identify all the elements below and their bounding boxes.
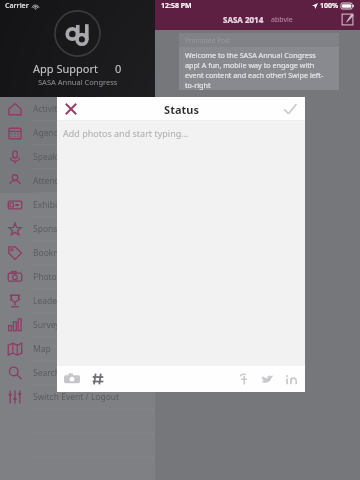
button[interactable]: Attendees bbox=[0, 169, 155, 193]
button[interactable]: Surveys bbox=[0, 313, 155, 337]
staticText: Status bbox=[164, 102, 199, 117]
button[interactable]: Switch Event / Logout bbox=[0, 385, 155, 409]
button[interactable]: Add hashtag bbox=[91, 372, 105, 386]
staticText: Photos bbox=[33, 271, 61, 283]
button[interactable]: Leaderboard bbox=[0, 289, 155, 313]
staticText: Search bbox=[33, 367, 60, 379]
button[interactable]: Map bbox=[0, 337, 155, 361]
button[interactable]: Activity bbox=[0, 97, 155, 121]
staticText: Exhibitors bbox=[33, 199, 73, 211]
button[interactable]: Speakers bbox=[0, 145, 155, 169]
staticText: Speakers bbox=[33, 151, 70, 163]
button[interactable]: Add photos and start typing... bbox=[57, 121, 305, 366]
button[interactable]: Close bbox=[61, 99, 81, 119]
button[interactable]: Photos bbox=[0, 265, 155, 289]
staticText: Map bbox=[33, 343, 51, 355]
button[interactable]: Share to LinkedIn bbox=[285, 373, 298, 386]
staticText: Welcome to the SASA Annual Congress app!… bbox=[185, 50, 329, 90]
button[interactable]: Compose post bbox=[340, 12, 355, 27]
staticText: Sponsors bbox=[33, 223, 71, 235]
button[interactable]: Search bbox=[0, 361, 155, 385]
button[interactable]: Bookmarks bbox=[0, 241, 155, 265]
staticText: Carrier bbox=[5, 1, 29, 11]
staticText: Activity bbox=[33, 103, 62, 115]
staticText: Agenda bbox=[33, 127, 64, 139]
button[interactable]: Exhibitors bbox=[0, 193, 155, 217]
staticText: 0 bbox=[115, 61, 122, 76]
staticText: Surveys bbox=[33, 319, 64, 331]
staticText: Switch Event / Logout bbox=[33, 391, 120, 403]
staticText: abbvie bbox=[271, 15, 293, 25]
button[interactable]: Add photo bbox=[64, 371, 80, 387]
button[interactable]: Agenda bbox=[0, 121, 155, 145]
button[interactable]: Post status bbox=[281, 100, 299, 118]
staticText: SASA 2014 bbox=[223, 14, 264, 25]
button[interactable]: Share to Facebook bbox=[237, 373, 250, 386]
staticText: 12:58 PM bbox=[161, 1, 192, 11]
button[interactable]: Sponsors bbox=[0, 217, 155, 241]
staticText: SASA Annual Congress bbox=[38, 77, 118, 87]
staticText: Leaderboard bbox=[33, 295, 85, 307]
staticText: Bookmarks bbox=[33, 247, 79, 259]
staticText: Promoted Post bbox=[185, 36, 231, 45]
staticText: Add photos and start typing... bbox=[63, 127, 189, 139]
staticText: App Support bbox=[33, 61, 98, 76]
staticText: Attendees bbox=[33, 175, 74, 187]
button[interactable]: Share to Twitter bbox=[261, 373, 274, 386]
staticText: 100% bbox=[320, 1, 339, 11]
